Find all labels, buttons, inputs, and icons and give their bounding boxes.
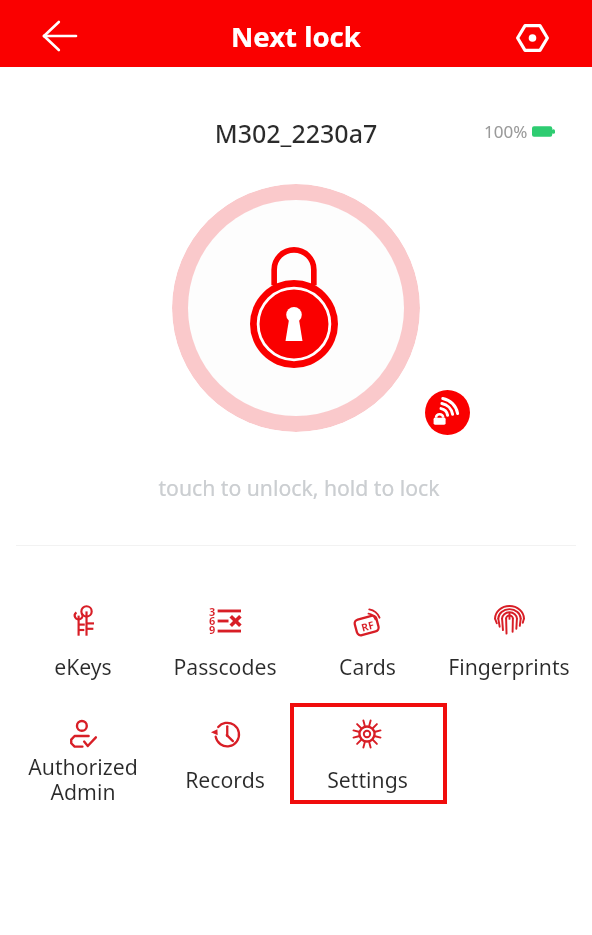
button[interactable]: Settings [296, 719, 438, 809]
button[interactable]: Settings [290, 703, 447, 804]
staticText: Settings [327, 765, 408, 794]
staticText: Authorized Admin [28, 752, 138, 806]
staticText: RF [360, 618, 376, 634]
button[interactable]: Records [154, 719, 296, 809]
button[interactable]: Authorized Admin [12, 719, 154, 809]
staticText: Cards [339, 652, 396, 681]
button[interactable]: Remote unlock [425, 390, 470, 435]
button[interactable]: Unlock [172, 184, 420, 432]
staticText: Fingerprints [448, 652, 570, 681]
button[interactable]: eKeys [12, 606, 154, 696]
staticText: 3 [209, 604, 216, 619]
button[interactable]: Lock settings [504, 13, 560, 63]
staticText: eKeys [54, 652, 112, 681]
staticText: 100% [484, 120, 528, 143]
staticText: M302_2230a7 [0, 116, 592, 150]
staticText: Next lock [231, 18, 361, 55]
staticText: 9 [209, 622, 216, 637]
button[interactable]: RF [296, 606, 438, 696]
staticText: 6 [209, 613, 216, 628]
staticText: Records [185, 765, 265, 794]
staticText: Passcodes [173, 652, 277, 681]
button[interactable]: Back [30, 11, 88, 61]
staticText: touch to unlock, hold to lock [3, 473, 592, 502]
button[interactable]: 3 [154, 606, 296, 696]
button[interactable]: Fingerprints [438, 606, 580, 696]
